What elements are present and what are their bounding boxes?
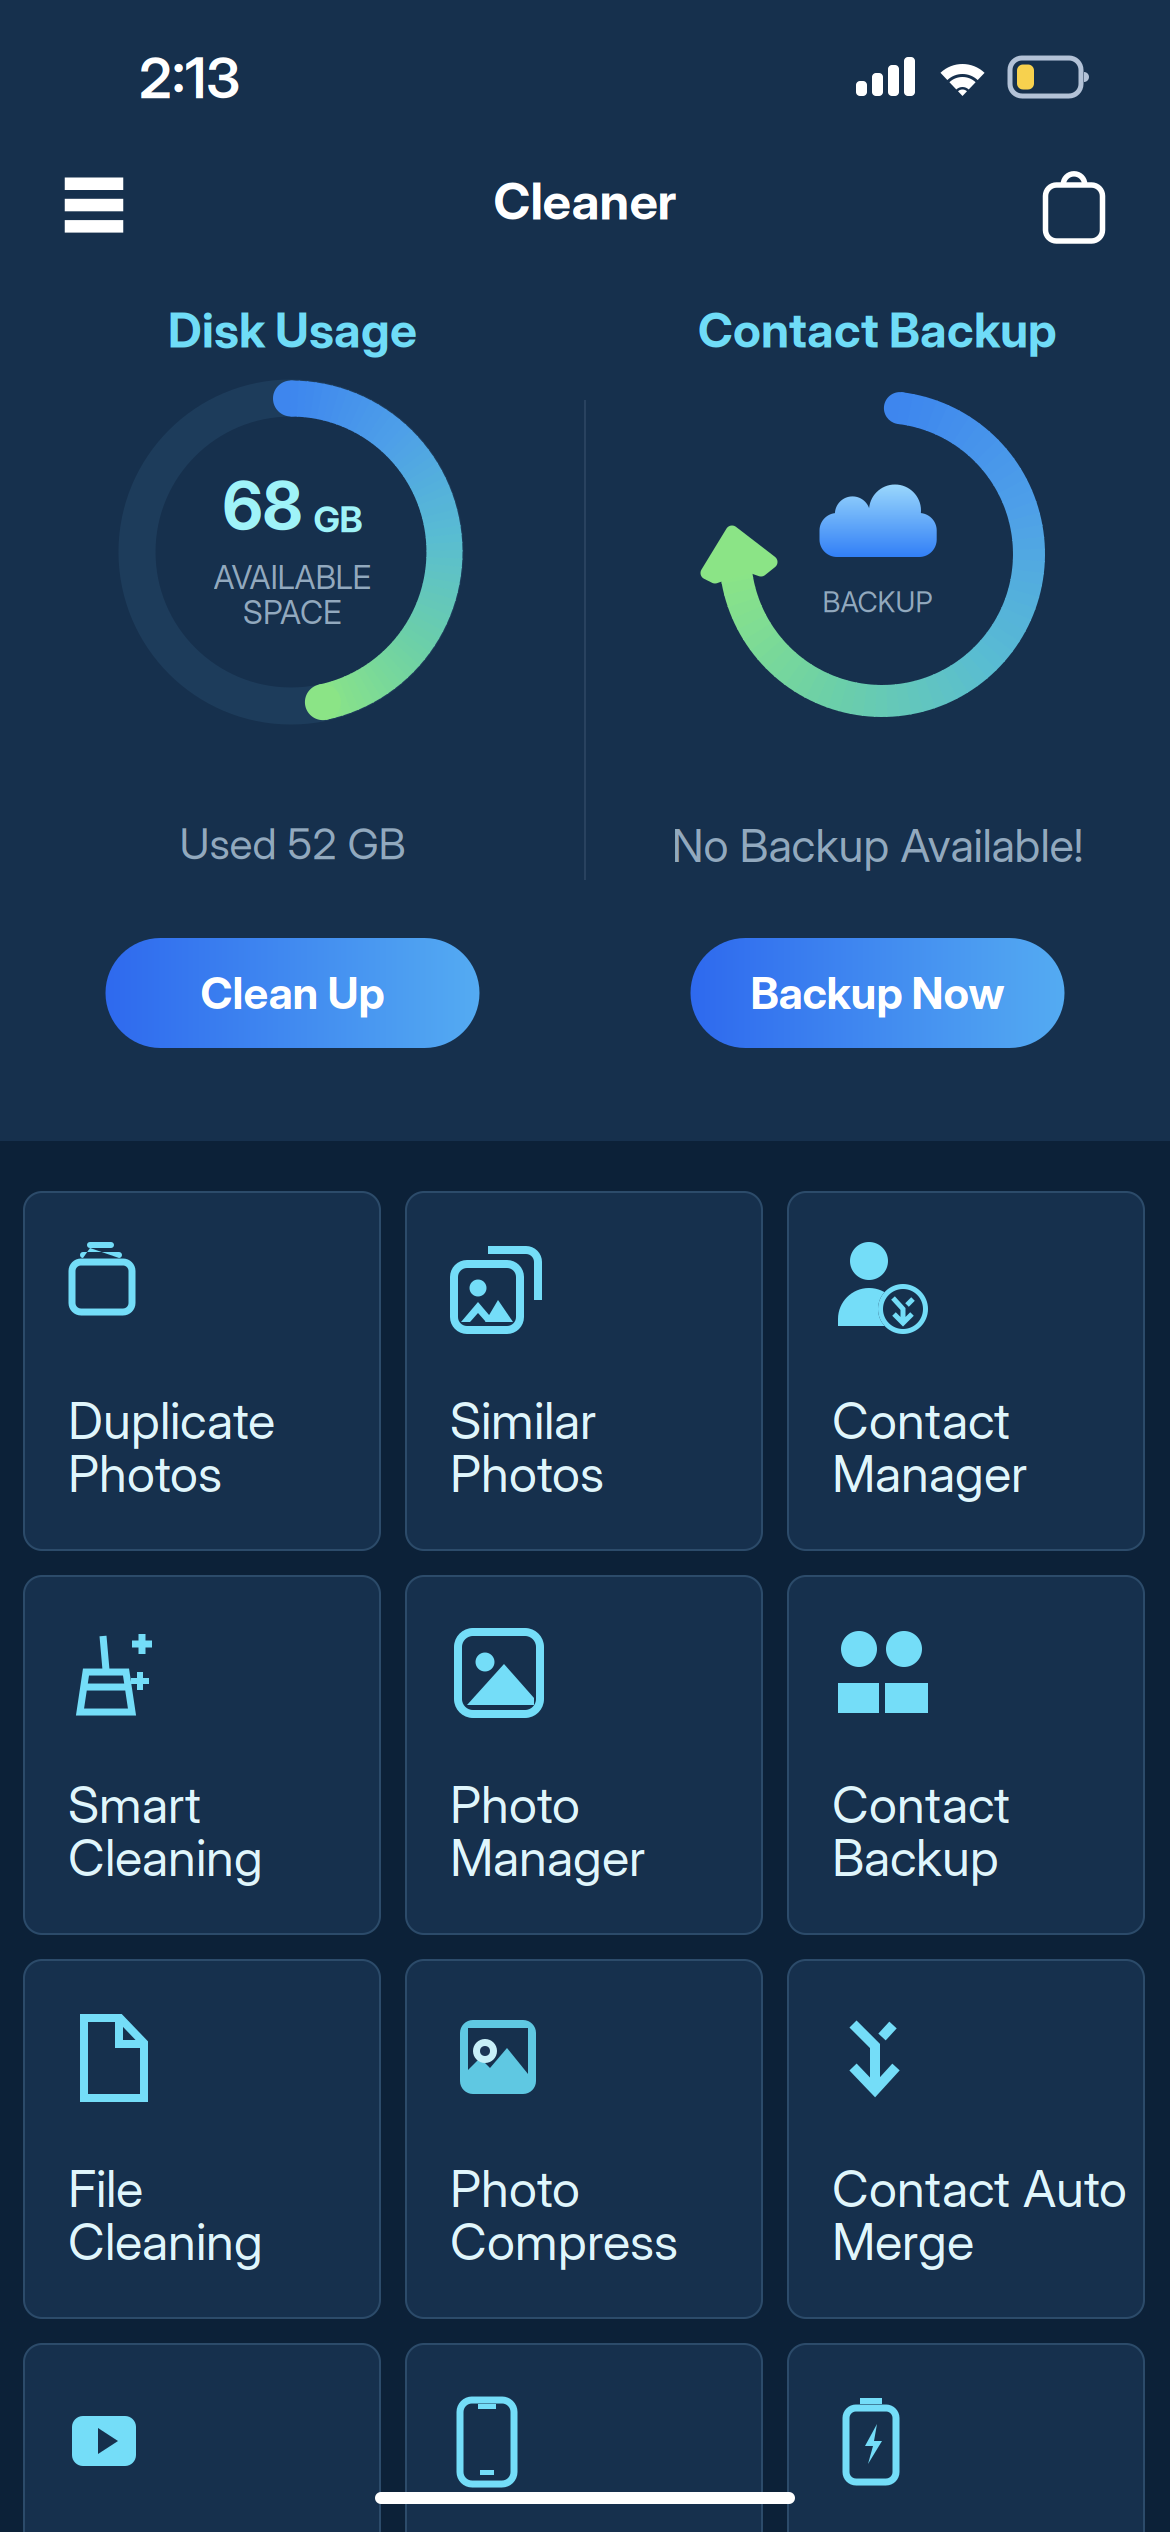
staticText: Contact Auto	[832, 2158, 1127, 2219]
staticText: Duplicate	[68, 1390, 275, 1451]
staticText: Clean Up	[200, 966, 384, 1020]
staticText: Merge	[832, 2211, 974, 2272]
staticText: Photos	[68, 1443, 222, 1504]
staticText: AVAILABLE	[213, 558, 371, 597]
button[interactable]: Contact	[788, 1576, 1144, 1934]
button[interactable]: File	[24, 1960, 380, 2318]
button[interactable]: Contact	[788, 1192, 1144, 1550]
button[interactable]: Photo	[406, 1960, 762, 2318]
staticText: Contact	[832, 1774, 1010, 1835]
staticText: Manager	[450, 1827, 645, 1888]
staticText: Contact	[832, 1390, 1010, 1451]
staticText: Cleaner	[493, 170, 676, 232]
staticText: SPACE	[243, 593, 342, 632]
button[interactable]	[406, 2344, 762, 2532]
staticText: Similar	[450, 1390, 596, 1451]
staticText: Cleaning	[68, 2211, 263, 2272]
staticText: File	[68, 2158, 143, 2219]
staticText: Photos	[450, 1443, 604, 1504]
staticText: Used 52 GB	[179, 818, 405, 870]
staticText: Photo	[450, 2158, 580, 2219]
button[interactable]	[24, 2344, 380, 2532]
staticText: 2:13	[139, 44, 240, 112]
staticText: Backup Now	[750, 966, 1004, 1020]
button[interactable]: Backup Now	[690, 938, 1064, 1048]
button[interactable]: Shop	[1016, 146, 1132, 256]
button[interactable]	[788, 2344, 1144, 2532]
staticText: BACKUP	[822, 585, 932, 619]
staticText: Cleaning	[68, 1827, 263, 1888]
staticText: 68	[222, 466, 302, 545]
staticText: Contact Backup	[698, 301, 1057, 359]
staticText: GB	[313, 497, 362, 541]
staticText: No Backup Available!	[671, 818, 1083, 873]
button[interactable]: Clean Up	[105, 938, 479, 1048]
staticText: Backup	[832, 1827, 999, 1888]
button[interactable]: Similar	[406, 1192, 762, 1550]
button[interactable]: Duplicate	[24, 1192, 380, 1550]
button[interactable]: Photo	[406, 1576, 762, 1934]
button[interactable]: Contact Auto	[788, 1960, 1144, 2318]
button[interactable]: Menu	[36, 146, 152, 256]
staticText: Photo	[450, 1774, 580, 1835]
button[interactable]: Smart	[24, 1576, 380, 1934]
staticText: Manager	[832, 1443, 1027, 1504]
staticText: Compress	[450, 2211, 678, 2272]
staticText: Disk Usage	[168, 301, 417, 359]
staticText: Smart	[68, 1774, 201, 1835]
